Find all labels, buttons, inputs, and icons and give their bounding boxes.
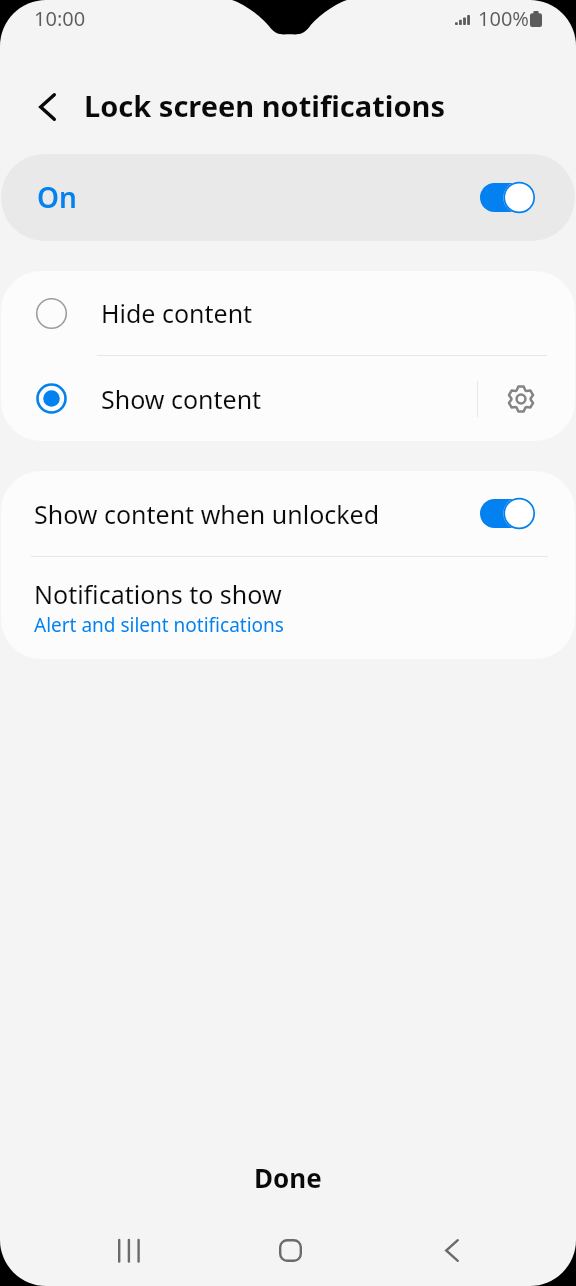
button[interactable]: Show content when unlocked [1, 471, 575, 556]
button[interactable]: Notifications to show [1, 557, 575, 659]
button[interactable]: Back [416, 1215, 488, 1286]
button[interactable]: Back [24, 84, 70, 130]
staticText: Alert and silent notifications [34, 612, 284, 638]
button[interactable]: Notification settings [478, 356, 564, 441]
button[interactable]: On [1, 154, 575, 241]
button[interactable]: Recent apps [93, 1215, 165, 1286]
button[interactable]: Done [188, 1147, 388, 1207]
staticText: Notifications to show [34, 577, 282, 611]
button[interactable]: Hide content [1, 271, 575, 355]
staticText: Show content [101, 382, 262, 416]
button[interactable]: Show content [1, 356, 477, 441]
staticText: 100% [478, 5, 529, 32]
staticText: Show content when unlocked [34, 497, 380, 531]
staticText: Hide content [101, 296, 253, 330]
staticText: On [37, 178, 77, 216]
staticText: 10:00 [34, 5, 86, 32]
staticText: Done [254, 1160, 322, 1195]
staticText: Lock screen notifications [84, 86, 445, 125]
button[interactable]: Home [254, 1215, 326, 1286]
